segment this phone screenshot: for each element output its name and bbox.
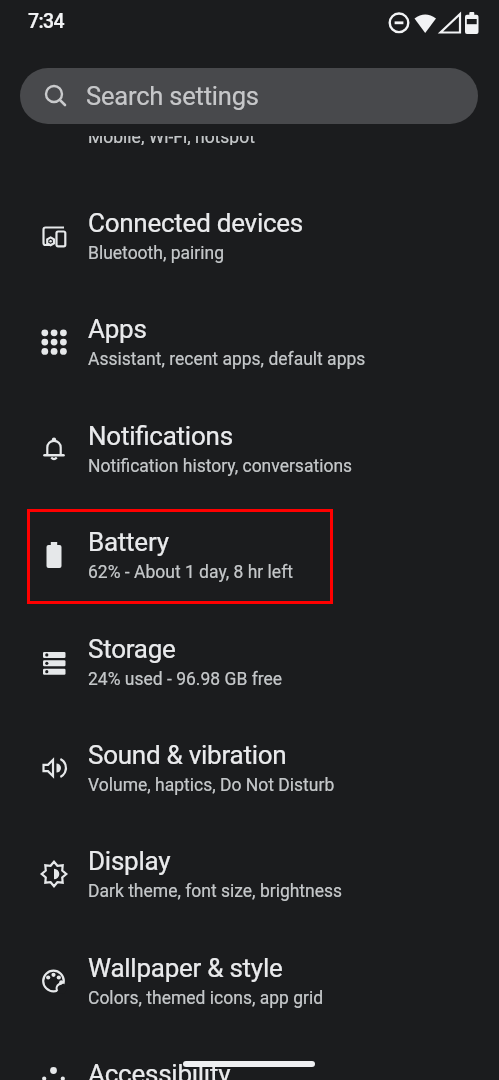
staticText: Notifications [88, 421, 233, 451]
staticText: Battery [88, 527, 169, 557]
staticText: Sound & vibration [88, 740, 287, 770]
staticText: Assistant, recent apps, default apps [88, 349, 366, 370]
staticText: 24% used - 96.98 GB free [88, 669, 283, 690]
staticText: Accessibility [88, 1059, 231, 1080]
staticText: 7:34 [28, 10, 65, 33]
button[interactable]: Battery [0, 502, 499, 608]
staticText: Mobile, Wi-Fi, hotspot [88, 136, 255, 145]
button[interactable]: Apps [0, 289, 499, 395]
staticText: Volume, haptics, Do Not Disturb [88, 775, 335, 796]
staticText: Search settings [86, 81, 259, 111]
staticText: Connected devices [88, 208, 304, 238]
button[interactable]: Sound & vibration [0, 715, 499, 821]
button[interactable]: Wallpaper & style [0, 928, 499, 1034]
staticText: Display [88, 846, 171, 876]
button[interactable]: Display [0, 821, 499, 927]
button[interactable]: Storage [0, 609, 499, 715]
staticText: 62% - About 1 day, 8 hr left [88, 562, 293, 583]
staticText: Dark theme, font size, brightness [88, 881, 343, 902]
button[interactable]: Notifications [0, 396, 499, 502]
staticText: Colors, themed icons, app grid [88, 988, 324, 1009]
button[interactable]: Search settings [20, 68, 478, 124]
button[interactable]: Connected devices [0, 183, 499, 289]
staticText: Storage [88, 634, 176, 664]
staticText: Bluetooth, pairing [88, 243, 225, 264]
staticText: Apps [88, 314, 147, 344]
staticText: Notification history, conversations [88, 456, 353, 477]
staticText: Wallpaper & style [88, 953, 283, 983]
